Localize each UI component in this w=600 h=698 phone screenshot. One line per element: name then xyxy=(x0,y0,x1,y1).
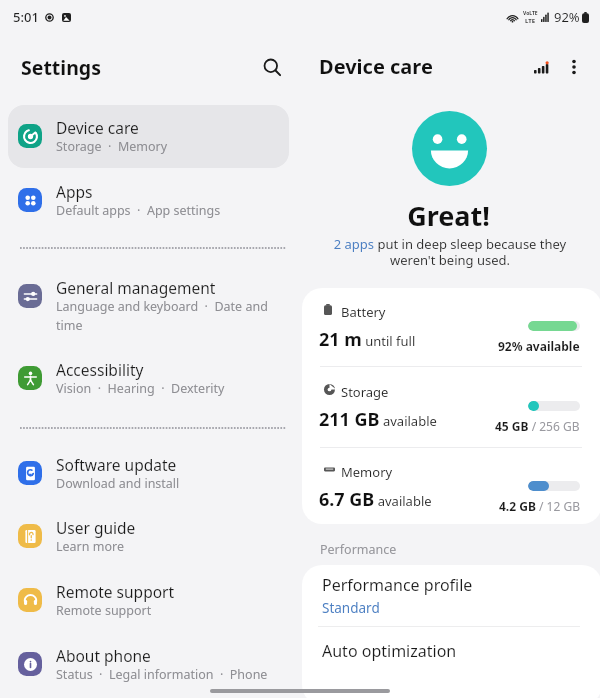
staticText: User guide xyxy=(56,517,136,538)
button[interactable] xyxy=(8,105,289,168)
staticText: 5:01 xyxy=(13,8,39,26)
staticText: Accessibility xyxy=(56,359,144,380)
button[interactable]: More options xyxy=(556,49,592,85)
button[interactable]: Performance profile xyxy=(302,565,600,626)
staticText: Remote support xyxy=(56,602,152,619)
staticText: About phone xyxy=(56,645,151,666)
button[interactable]: Memory xyxy=(302,448,600,524)
staticText: Performance xyxy=(320,541,397,558)
staticText: 4.2 GB / 12 GB xyxy=(499,498,580,514)
staticText: Battery xyxy=(341,303,386,321)
button[interactable]: Storage xyxy=(302,368,600,446)
staticText: Auto optimization xyxy=(322,640,457,662)
staticText: VoLTE xyxy=(523,10,538,17)
button[interactable]: Search xyxy=(254,49,290,85)
staticText: Language and keyboard · Date and time xyxy=(56,298,290,334)
staticText: Standard xyxy=(322,599,380,617)
button[interactable]: General management xyxy=(0,277,300,335)
button[interactable]: User guide xyxy=(0,517,300,575)
button[interactable]: About phone xyxy=(0,645,300,698)
button[interactable]: Usage statistics xyxy=(524,49,560,85)
button[interactable]: Accessibility xyxy=(0,359,300,417)
staticText: 92% available xyxy=(498,338,580,354)
staticText: Default apps · App settings xyxy=(56,202,221,219)
staticText: Storage · Memory xyxy=(56,138,168,155)
button[interactable]: Apps xyxy=(0,181,300,239)
staticText: 45 GB / 256 GB xyxy=(495,418,580,434)
button[interactable]: Battery xyxy=(302,288,600,366)
staticText: Device care xyxy=(56,117,139,138)
staticText: Vision · Hearing · Dexterity xyxy=(56,380,225,397)
staticText: Remote support xyxy=(56,581,175,602)
staticText: General management xyxy=(56,277,216,298)
button[interactable]: Software update xyxy=(0,454,300,512)
button[interactable]: Auto optimization xyxy=(302,627,600,682)
staticText: Memory xyxy=(341,463,393,481)
button[interactable]: Device care xyxy=(0,117,300,175)
button[interactable]: Remote support xyxy=(0,581,300,639)
staticText: Performance profile xyxy=(322,574,473,596)
staticText: LTE xyxy=(525,17,536,25)
staticText: 92% xyxy=(554,8,580,26)
staticText: Status · Legal information · Phone xyxy=(56,666,268,683)
staticText: Apps xyxy=(56,181,93,202)
staticText: Storage xyxy=(341,383,389,401)
staticText: 6.7 GB available xyxy=(319,487,432,512)
staticText: 211 GB available xyxy=(319,407,437,432)
staticText: Learn more xyxy=(56,538,124,555)
staticText: 21 m until full xyxy=(319,327,416,352)
staticText: Software update xyxy=(56,454,177,475)
staticText: Device care xyxy=(319,53,433,80)
staticText: Great! xyxy=(300,197,597,234)
staticText: 2 apps put in deep sleep because they we… xyxy=(318,235,582,268)
staticText: Download and install xyxy=(56,475,180,492)
staticText: Settings xyxy=(21,54,101,81)
